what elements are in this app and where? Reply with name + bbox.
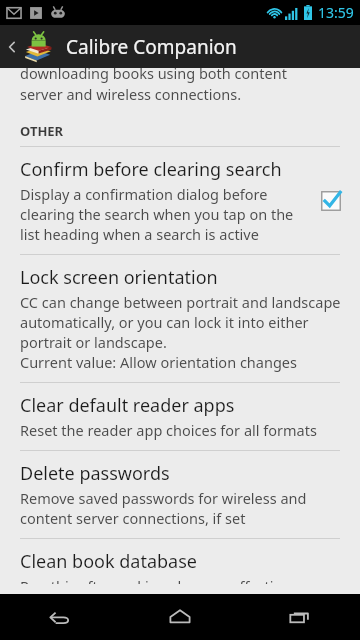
staticText: Run this after making changes affecting [20, 576, 292, 584]
staticText: OTHER [20, 122, 64, 140]
button[interactable]: Clean book database [0, 539, 360, 594]
staticText: Remove saved passwords for wireless and [20, 488, 307, 508]
staticText: content server connections, if set [20, 508, 246, 528]
staticText: 13:59 [318, 3, 354, 22]
staticText: Lock screen orientation [20, 265, 218, 290]
button[interactable]: Home [120, 594, 240, 640]
staticText: list heading when a search is active [20, 224, 259, 244]
staticText: Reset the reader app choices for all for… [20, 420, 317, 440]
staticText: Clear default reader apps [20, 393, 235, 418]
button[interactable]: Up, Calibre Companion [0, 25, 360, 68]
button[interactable]: Clear default reader apps [0, 383, 360, 451]
staticText: clearing the search when you tap on the [20, 204, 294, 224]
staticText: automatically, or you can lock it into e… [20, 312, 309, 332]
staticText: CC can change between portrait and lands… [20, 292, 341, 312]
button[interactable]: Back [0, 594, 120, 640]
staticText: downloading books using both content [20, 63, 287, 83]
staticText: Clean book database [20, 549, 197, 574]
staticText: Display a confirmation dialog before [20, 184, 268, 204]
staticText: portrait or landscape. [20, 332, 167, 352]
button[interactable]: Delete passwords [0, 451, 360, 539]
button[interactable]: Recent apps [240, 594, 360, 640]
staticText: Calibre Companion [66, 34, 237, 60]
staticText: Delete passwords [20, 461, 170, 486]
staticText: Confirm before clearing search [20, 157, 282, 182]
button[interactable]: Lock screen orientation [0, 255, 360, 383]
button[interactable]: Confirm before clearing search [0, 147, 360, 255]
button[interactable]: Confirm before clearing search toggle [316, 186, 346, 216]
staticText: server and wireless connections. [20, 84, 242, 104]
staticText: Current value: Allow orientation changes [20, 352, 297, 372]
